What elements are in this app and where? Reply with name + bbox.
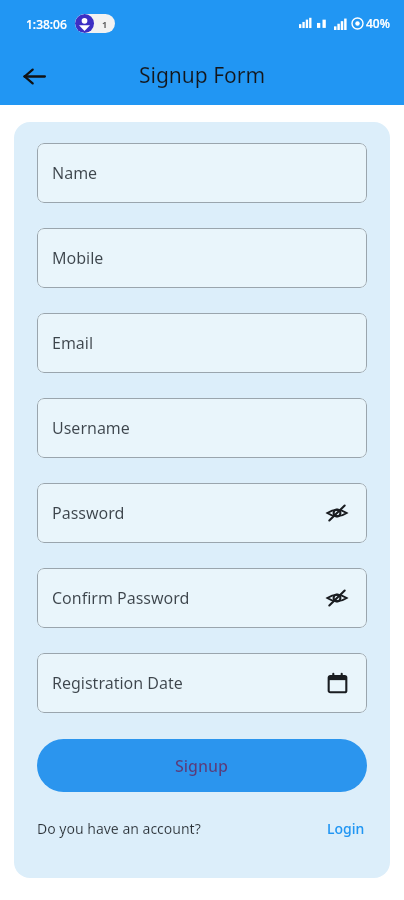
staticText: Password bbox=[52, 502, 125, 524]
staticText: Username bbox=[52, 417, 130, 439]
staticText: Mobile bbox=[52, 247, 104, 269]
staticText: Do you have an account? bbox=[37, 819, 201, 838]
button[interactable]: Registration Date bbox=[37, 653, 367, 713]
staticText: 40% bbox=[366, 15, 390, 31]
staticText: Login bbox=[327, 819, 365, 838]
staticText: Email bbox=[52, 332, 94, 354]
staticText: Signup Form bbox=[139, 61, 266, 90]
button[interactable]: Signup bbox=[37, 739, 367, 792]
button[interactable]: Pick registration date bbox=[319, 665, 355, 701]
button[interactable]: Toggle password visibility bbox=[319, 495, 355, 531]
staticText: Signup bbox=[175, 755, 229, 777]
button[interactable]: Password bbox=[37, 483, 367, 543]
button[interactable]: Mobile bbox=[37, 228, 367, 288]
button[interactable]: Email bbox=[37, 313, 367, 373]
button[interactable]: Login bbox=[325, 817, 367, 840]
button[interactable]: Back bbox=[12, 54, 56, 98]
staticText: Confirm Password bbox=[52, 587, 190, 609]
button[interactable]: Username bbox=[37, 398, 367, 458]
button[interactable]: Toggle password visibility bbox=[319, 580, 355, 616]
staticText: 1:38:06 bbox=[26, 16, 67, 32]
staticText: 1 bbox=[102, 18, 108, 30]
button[interactable]: Confirm Password bbox=[37, 568, 367, 628]
staticText: Name bbox=[52, 162, 98, 184]
staticText: Registration Date bbox=[52, 672, 183, 694]
button[interactable]: Name bbox=[37, 143, 367, 203]
